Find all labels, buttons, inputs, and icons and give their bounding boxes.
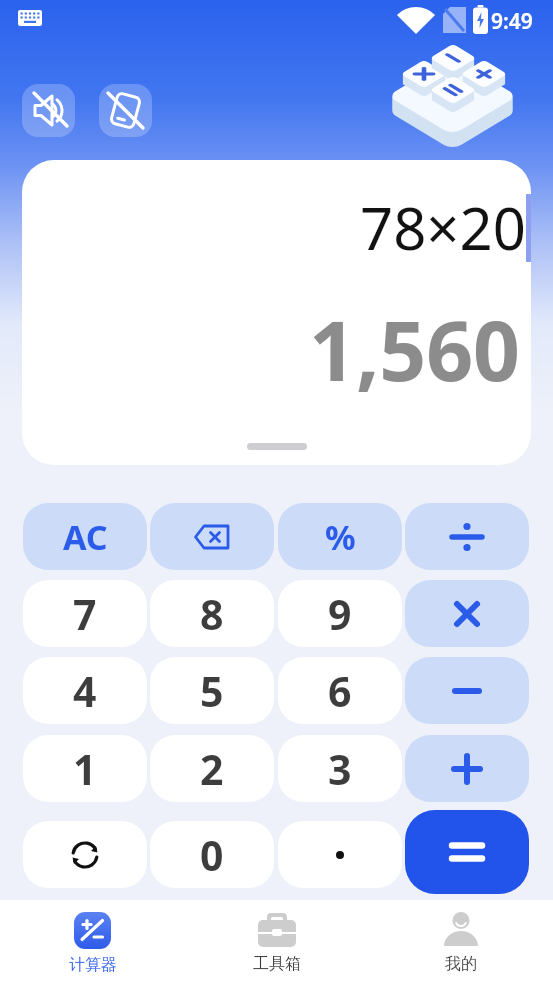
staticText: 1,560 <box>309 293 520 405</box>
button[interactable] <box>405 503 529 570</box>
staticText: 计算器 <box>69 955 117 975</box>
button[interactable] <box>278 821 402 888</box>
staticText: 0 <box>200 827 224 883</box>
staticText: 工具箱 <box>253 954 301 974</box>
button[interactable]: 8 <box>150 580 274 647</box>
button[interactable] <box>99 84 152 137</box>
button[interactable]: 我的 <box>369 900 553 983</box>
button[interactable] <box>405 735 529 802</box>
staticText: 2 <box>200 741 224 797</box>
button[interactable] <box>405 580 529 647</box>
button[interactable]: 工具箱 <box>185 900 369 983</box>
staticText: 78×20 <box>360 188 526 267</box>
staticText: 4 <box>73 663 97 719</box>
button[interactable]: 9 <box>278 580 402 647</box>
button[interactable] <box>405 657 529 724</box>
button[interactable]: 5 <box>150 657 274 724</box>
staticText: % <box>325 514 356 560</box>
staticText: AC <box>63 514 108 560</box>
button[interactable]: AC <box>23 503 147 570</box>
staticText: 8 <box>200 586 224 642</box>
staticText: 1 <box>73 741 97 797</box>
button[interactable] <box>405 810 529 894</box>
button[interactable]: 2 <box>150 735 274 802</box>
button[interactable]: 3 <box>278 735 402 802</box>
button[interactable]: 计算器 <box>0 900 185 983</box>
button[interactable]: 6 <box>278 657 402 724</box>
staticText: 我的 <box>445 954 477 974</box>
staticText: 6 <box>328 663 352 719</box>
button[interactable]: 7 <box>23 580 147 647</box>
staticText: 7 <box>73 586 97 642</box>
button[interactable]: 1 <box>23 735 147 802</box>
staticText: 9:49 <box>491 7 533 36</box>
staticText: 9 <box>328 586 352 642</box>
button[interactable]: 0 <box>150 821 274 888</box>
button[interactable]: 4 <box>23 657 147 724</box>
staticText: 5 <box>200 663 224 719</box>
staticText: 3 <box>328 741 352 797</box>
button[interactable]: % <box>278 503 402 570</box>
button[interactable] <box>150 503 274 570</box>
button[interactable] <box>22 84 75 137</box>
button[interactable] <box>23 821 147 888</box>
